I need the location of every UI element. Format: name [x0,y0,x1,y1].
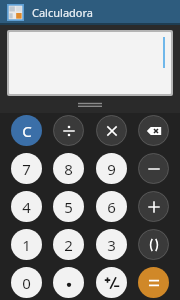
button[interactable]: 6 [96,191,127,222]
staticText: 3 [107,235,116,255]
staticText: 6 [107,197,116,217]
button[interactable]: 5 [53,191,84,222]
button[interactable]: 4 [11,191,42,222]
staticText: 8 [64,159,73,179]
button[interactable]: 8 [53,153,84,184]
button[interactable]: ( ) [138,229,169,260]
staticText: 5 [64,197,73,217]
button[interactable]: = [138,267,169,298]
staticText: 7 [22,159,31,179]
staticText: 4 [22,197,31,217]
button[interactable]: − [138,153,169,184]
button[interactable]: × [96,115,127,146]
button[interactable]: 9 [96,153,127,184]
button[interactable]: Borrar [138,115,169,146]
staticText: C [22,121,32,141]
button[interactable]: 2 [53,229,84,260]
button[interactable]: +/− [96,267,127,298]
button[interactable]: . [53,267,84,298]
button[interactable]: 1 [11,229,42,260]
staticText: 0 [22,273,31,293]
staticText: 2 [64,235,73,255]
button[interactable]: 3 [96,229,127,260]
button[interactable]: 0 [11,267,42,298]
staticText: 9 [107,159,116,179]
staticText: 1 [22,235,31,255]
button[interactable]: ÷ [53,115,84,146]
button[interactable]: + [138,191,169,222]
staticText: Calculadora [32,5,93,20]
button[interactable]: 7 [11,153,42,184]
button[interactable]: C [11,115,42,146]
